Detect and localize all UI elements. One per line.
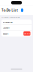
staticText: 3 tasks remaining: [2, 16, 20, 19]
button[interactable]: Delete: [23, 31, 30, 36]
staticText: Groceries: [3, 20, 13, 24]
staticText: Delete: [24, 32, 30, 35]
staticText: Laundry: [3, 26, 10, 29]
button[interactable]: Add task: [21, 8, 23, 12]
button[interactable]: Laundry: [1, 25, 32, 30]
button[interactable]: Groceries: [1, 19, 32, 25]
staticText: To-Do List: [2, 8, 18, 12]
staticText: Report: [3, 32, 9, 35]
